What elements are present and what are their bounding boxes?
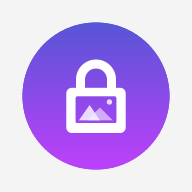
button[interactable]: Locked Photos <box>22 22 169 169</box>
